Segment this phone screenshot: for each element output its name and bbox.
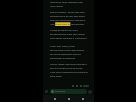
- staticText: Vouloir refaire suffit pour postuler a t…: [50, 63, 88, 78]
- button[interactable]: Send: [88, 90, 92, 94]
- button[interactable]: Message action: [71, 84, 75, 88]
- button[interactable]: Message action: [79, 84, 83, 88]
- staticText: Bonne nouvelle : votre profil a ete pres…: [50, 11, 88, 26]
- staticText: Il s'agit de realiser un court enregistr…: [50, 29, 88, 40]
- staticText: Merci pour votre confiance chez Leroy Me…: [50, 1, 88, 8]
- button[interactable]: More: [83, 85, 89, 87]
- staticText: Repondre: [55, 90, 66, 93]
- staticText: Chez Leroy Merlin, votre personnalite et…: [50, 45, 88, 60]
- button[interactable]: Nav: [52, 96, 57, 101]
- button[interactable]: Repondre: [50, 89, 87, 94]
- button[interactable]: Nav: [66, 96, 71, 101]
- button[interactable]: Nav: [80, 96, 85, 101]
- button[interactable]: Message action: [75, 84, 79, 88]
